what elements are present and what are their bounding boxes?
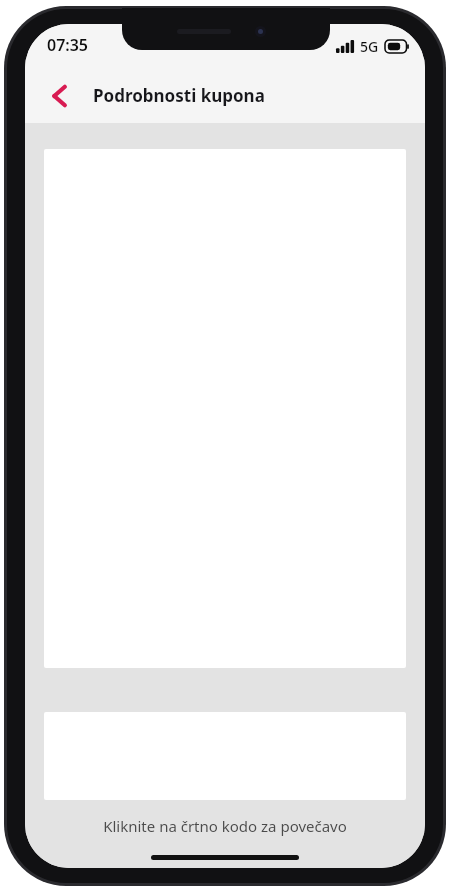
staticText: Podrobnosti kupona bbox=[93, 84, 265, 107]
staticText: Kliknite na črtno kodo za povečavo bbox=[41, 816, 409, 836]
staticText: 5G bbox=[360, 37, 379, 56]
staticText: 07:35 bbox=[47, 34, 89, 56]
button[interactable]: Nazaj bbox=[38, 74, 82, 118]
